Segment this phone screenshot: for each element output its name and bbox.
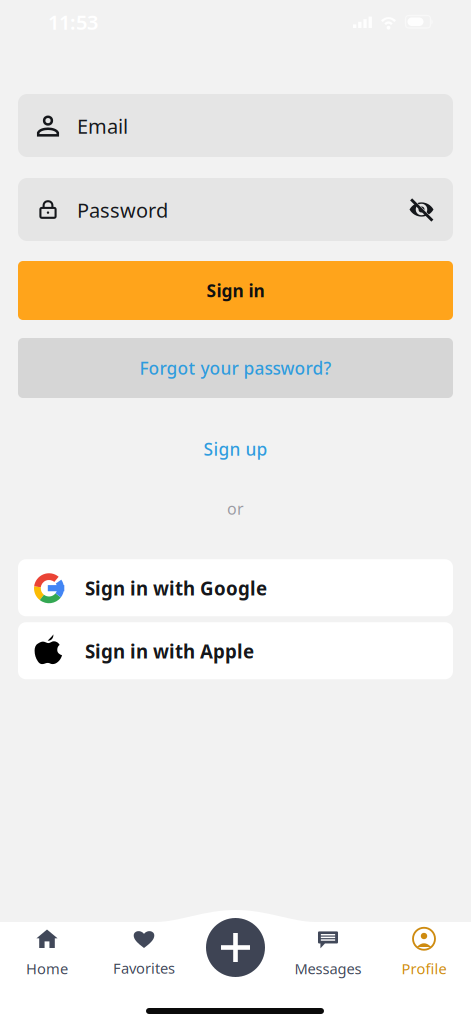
staticText: Sign in with Apple	[85, 639, 254, 664]
staticText: Forgot your password?	[139, 356, 331, 379]
button[interactable]: Add	[206, 918, 265, 977]
staticText: Profile	[401, 959, 446, 978]
staticText: Email	[77, 113, 128, 139]
button[interactable]: Sign up	[155, 434, 315, 464]
staticText: Sign in	[206, 279, 264, 302]
staticText: Favorites	[113, 958, 175, 978]
button[interactable]: Sign in	[18, 261, 453, 320]
button[interactable]: Favorites	[97, 930, 191, 986]
staticText: Password	[77, 197, 168, 223]
button[interactable]: Messages	[281, 930, 375, 986]
button[interactable]: Profile	[377, 930, 471, 986]
button[interactable]: Home	[0, 930, 94, 986]
button[interactable]: Forgot your password?	[18, 338, 453, 398]
staticText: Sign up	[203, 437, 267, 460]
button[interactable]: Sign in with Apple	[18, 622, 453, 679]
staticText: 11:53	[48, 9, 98, 35]
staticText: Messages	[294, 959, 361, 978]
button[interactable]: Sign in with Google	[18, 559, 453, 616]
staticText: or	[227, 498, 244, 519]
staticText: Home	[26, 959, 68, 978]
staticText: Sign in with Google	[85, 576, 267, 601]
